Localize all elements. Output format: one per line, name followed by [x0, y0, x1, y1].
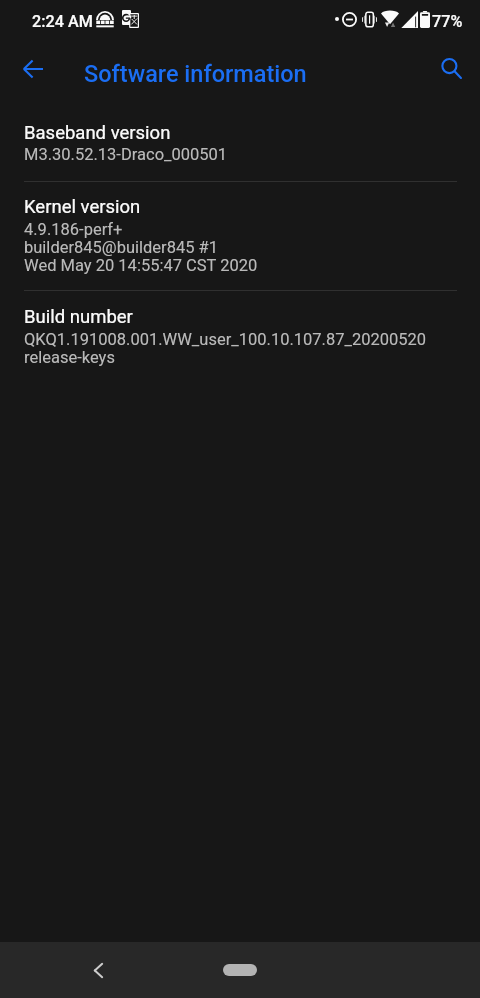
staticText: Baseband version — [24, 122, 171, 144]
button[interactable]: Search — [431, 48, 471, 88]
staticText: 4.9.186-perf+ builder845@builder845 #1 W… — [24, 220, 258, 275]
button[interactable]: Baseband version — [0, 105, 480, 181]
staticText: M3.30.52.13-Draco_000501 — [24, 145, 228, 164]
button[interactable]: Navigate up — [13, 49, 53, 89]
staticText: Kernel version — [24, 196, 141, 218]
button[interactable]: Home — [223, 964, 257, 976]
button[interactable]: Build number — [0, 291, 480, 383]
staticText: 77% — [432, 12, 463, 31]
button[interactable]: Kernel version — [0, 182, 480, 290]
staticText: Build number — [24, 306, 133, 328]
staticText: 2:24 AM — [32, 12, 93, 31]
button[interactable]: Back — [78, 950, 118, 990]
staticText: QKQ1.191008.001.WW_user_100.10.107.87_20… — [24, 330, 427, 367]
staticText: Software information — [84, 60, 307, 88]
